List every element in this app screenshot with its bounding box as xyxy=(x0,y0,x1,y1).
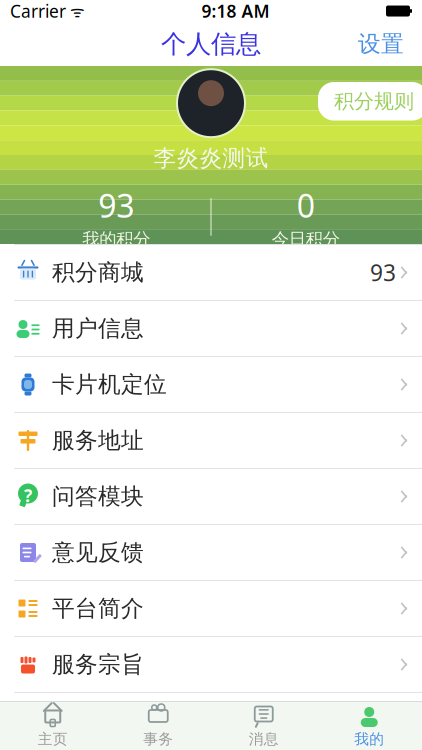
staticText: 我的积分 xyxy=(82,228,150,250)
button[interactable]: 用户信息 xyxy=(0,301,422,356)
staticText: 李炎炎测试 xyxy=(153,144,268,172)
button[interactable]: ? xyxy=(0,469,422,524)
staticText: 消息 xyxy=(249,730,279,748)
staticText: 平台简介 xyxy=(52,595,144,622)
staticText: 意见反馈 xyxy=(52,539,144,566)
button[interactable]: 事务 xyxy=(105,702,211,750)
staticText: 9:18 AM xyxy=(201,0,269,22)
staticText: 93 xyxy=(98,184,134,226)
button[interactable]: 积分规则 xyxy=(318,82,422,121)
staticText: 服务宗旨 xyxy=(52,651,144,678)
staticText: 0 xyxy=(297,184,315,226)
button[interactable]: 服务地址 xyxy=(0,413,422,468)
button[interactable]: 平台简介 xyxy=(0,581,422,636)
staticText: 问答模块 xyxy=(52,483,144,510)
button[interactable]: 消息 xyxy=(211,702,316,750)
button[interactable]: 设置 xyxy=(346,22,416,66)
button[interactable]: 服务宗旨 xyxy=(0,637,422,692)
staticText: 设置 xyxy=(358,30,404,58)
staticText: 93 xyxy=(370,257,396,287)
staticText: 个人信息 xyxy=(161,28,261,59)
staticText: 用户信息 xyxy=(52,315,144,342)
staticText: ? xyxy=(24,484,32,507)
button[interactable]: 我的 xyxy=(316,702,422,750)
button[interactable]: 卡片机定位 xyxy=(0,357,422,412)
button[interactable]: 意见反馈 xyxy=(0,525,422,580)
staticText: Carrier xyxy=(10,0,66,22)
staticText: 事务 xyxy=(143,730,173,748)
staticText: 服务地址 xyxy=(52,427,144,454)
staticText: 我的 xyxy=(354,730,384,748)
staticText: 今日积分 xyxy=(272,228,340,250)
staticText: 主页 xyxy=(38,730,68,748)
staticText: 卡片机定位 xyxy=(52,371,167,398)
button[interactable]: 主页 xyxy=(0,702,105,750)
staticText: ᯤ xyxy=(66,0,85,22)
button[interactable]: 积分商城 xyxy=(0,245,422,300)
staticText: 积分商城 xyxy=(52,259,144,286)
staticText: 积分规则 xyxy=(334,89,414,114)
